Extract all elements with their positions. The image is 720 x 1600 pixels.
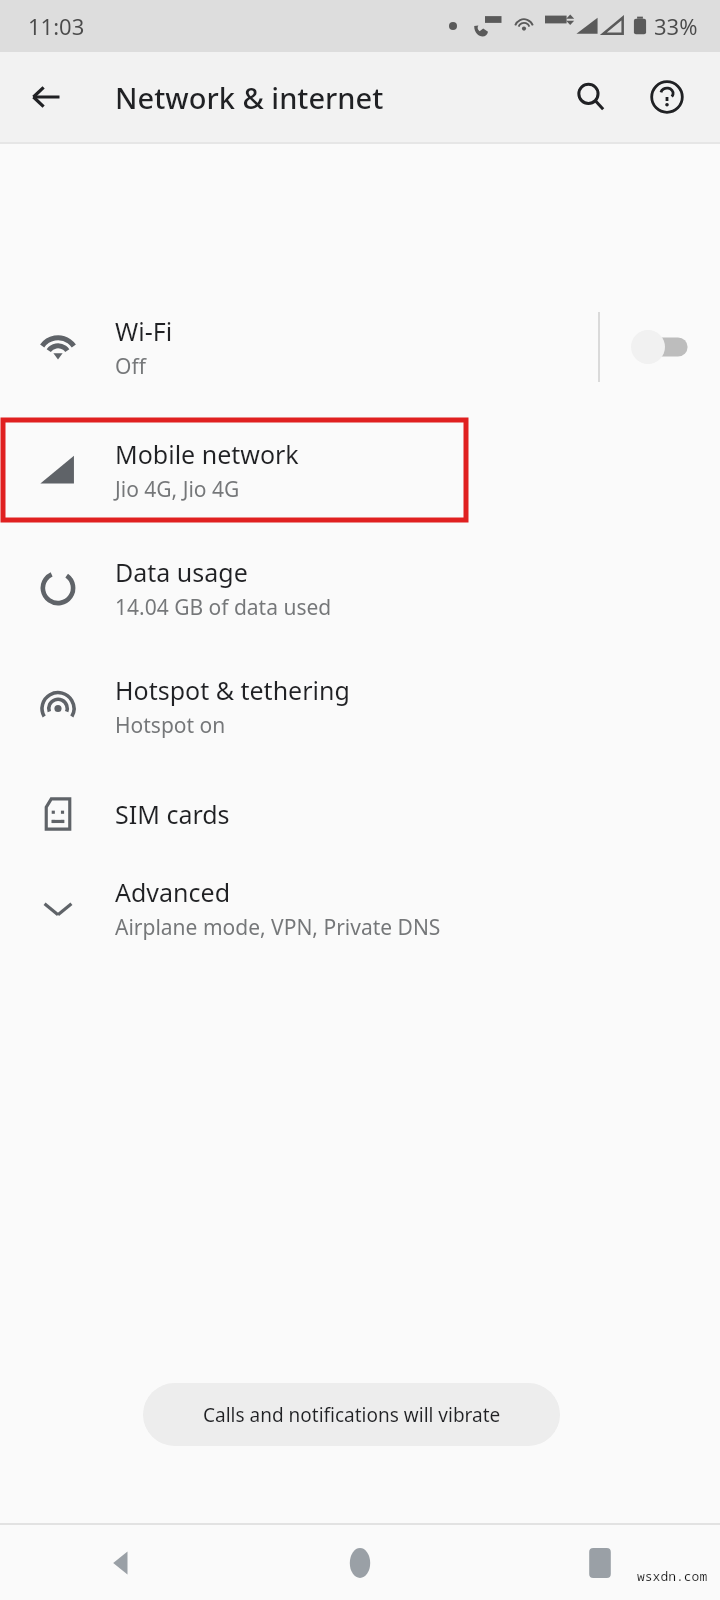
staticText: Jio 4G, Jio 4G <box>115 475 240 504</box>
staticText: 33% <box>654 11 698 41</box>
button[interactable]: Data usage <box>0 538 720 638</box>
button[interactable]: Advanced <box>0 858 720 958</box>
staticText: Mobile network <box>115 437 299 471</box>
staticText: Airplane mode, VPN, Private DNS <box>115 913 441 942</box>
staticText: Hotspot & tethering <box>115 673 350 707</box>
staticText: Hotspot on <box>115 711 226 740</box>
button[interactable]: Back <box>0 1525 240 1600</box>
button[interactable]: SIM cards <box>0 764 720 864</box>
button[interactable]: Hotspot & tethering <box>0 656 720 756</box>
button[interactable]: Back <box>18 69 74 125</box>
staticText: 11:03 <box>28 11 85 41</box>
button[interactable]: Wi-Fi toggle <box>600 297 720 397</box>
staticText: Wi-Fi <box>115 314 173 348</box>
button[interactable]: Home <box>240 1525 480 1600</box>
staticText: wsxdn.com <box>637 1567 708 1585</box>
staticText: SIM cards <box>115 797 230 831</box>
staticText: Advanced <box>115 875 231 909</box>
staticText: Calls and notifications will vibrate <box>203 1402 501 1428</box>
staticText: Data usage <box>115 555 248 589</box>
staticText: Off <box>115 352 146 381</box>
button[interactable]: Help <box>639 69 695 125</box>
staticText: Network & internet <box>115 78 384 117</box>
button[interactable]: Recents <box>480 1525 720 1600</box>
button[interactable]: Calls and notifications will vibrate <box>143 1383 560 1446</box>
button[interactable]: Wi-Fi <box>0 297 720 397</box>
button[interactable]: Search <box>563 69 619 125</box>
button[interactable]: Mobile network <box>0 420 720 520</box>
staticText: 14.04 GB of data used <box>115 593 332 622</box>
